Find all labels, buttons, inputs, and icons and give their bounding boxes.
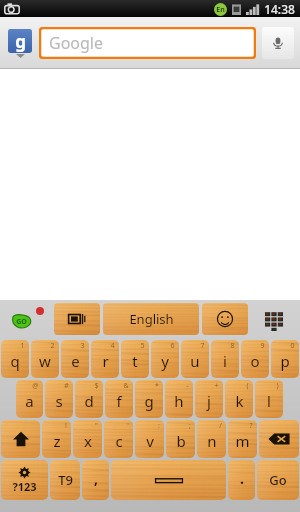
staticText: f xyxy=(116,391,122,411)
button[interactable]: T9 xyxy=(50,460,80,500)
button[interactable]: ; xyxy=(166,420,195,458)
button[interactable]: 0 xyxy=(271,340,299,378)
button[interactable]: 7 xyxy=(181,340,209,378)
staticText: g xyxy=(144,391,154,411)
staticText: T9 xyxy=(58,471,73,489)
staticText: e xyxy=(71,351,80,371)
button[interactable]: Google xyxy=(39,27,256,59)
button[interactable]: 6 xyxy=(151,340,179,378)
staticText: o xyxy=(250,351,260,371)
button[interactable]: 9 xyxy=(241,340,269,378)
staticText: b xyxy=(176,431,186,451)
staticText: v xyxy=(146,431,154,451)
staticText: h xyxy=(174,391,184,411)
button[interactable]: Space xyxy=(111,460,226,500)
staticText: l xyxy=(267,391,271,411)
staticText: ' xyxy=(127,421,129,431)
button[interactable]: & xyxy=(105,380,133,418)
button[interactable]: g xyxy=(6,28,34,58)
button[interactable]: Layout xyxy=(54,303,100,335)
button[interactable]: Shift xyxy=(1,420,40,458)
staticText: c xyxy=(115,431,123,451)
staticText: i xyxy=(223,351,227,371)
staticText: d xyxy=(84,391,94,411)
staticText: * xyxy=(155,381,159,391)
staticText: Google xyxy=(49,32,104,54)
staticText: / xyxy=(219,421,222,431)
button[interactable]: + xyxy=(195,380,223,418)
staticText: ( xyxy=(246,381,249,391)
button[interactable]: 3 xyxy=(61,340,89,378)
staticText: . xyxy=(240,469,244,488)
button[interactable]: * xyxy=(135,380,163,418)
staticText: En xyxy=(216,5,225,15)
button[interactable]: English xyxy=(103,303,199,335)
button[interactable]: ! xyxy=(42,420,71,458)
button[interactable]: Go xyxy=(257,460,299,500)
staticText: x xyxy=(84,431,92,451)
staticText: 4 xyxy=(110,341,115,351)
button[interactable]: - xyxy=(165,380,193,418)
button[interactable]: " xyxy=(73,420,102,458)
staticText: English xyxy=(129,310,174,328)
staticText: n xyxy=(207,431,217,451)
staticText: 0 xyxy=(290,341,295,351)
button[interactable]: 4 xyxy=(91,340,119,378)
staticText: 3 xyxy=(80,341,85,351)
staticText: # xyxy=(64,381,69,391)
button[interactable]: 8 xyxy=(211,340,239,378)
button[interactable]: ' xyxy=(104,420,133,458)
staticText: m xyxy=(235,431,250,451)
button[interactable]: 1 xyxy=(1,340,29,378)
staticText: & xyxy=(123,381,129,391)
button[interactable]: , xyxy=(82,460,109,500)
button[interactable]: / xyxy=(197,420,226,458)
staticText: 2 xyxy=(50,341,55,351)
button[interactable]: @ xyxy=(16,380,43,418)
button[interactable]: 2 xyxy=(31,340,59,378)
button[interactable]: Backspace xyxy=(259,420,299,458)
staticText: j xyxy=(207,391,211,411)
staticText: GO xyxy=(16,317,27,327)
staticText: " xyxy=(95,421,98,431)
staticText: ? xyxy=(249,421,253,431)
button[interactable]: Emoji xyxy=(202,303,248,335)
button[interactable]: 5 xyxy=(121,340,149,378)
staticText: 5 xyxy=(140,341,145,351)
staticText: ) xyxy=(276,381,279,391)
staticText: k xyxy=(235,391,244,411)
staticText: r xyxy=(102,351,109,371)
button[interactable]: # xyxy=(45,380,73,418)
button[interactable]: ) xyxy=(255,380,283,418)
button[interactable]: ( xyxy=(225,380,253,418)
button[interactable]: GO Keyboard xyxy=(3,303,51,335)
staticText: @ xyxy=(32,381,39,391)
button[interactable]: : xyxy=(135,420,164,458)
staticText: p xyxy=(280,351,290,371)
staticText: Go xyxy=(269,471,287,489)
staticText: 8 xyxy=(230,341,235,351)
staticText: , xyxy=(94,469,98,488)
staticText: w xyxy=(39,351,51,371)
button[interactable]: Voice search xyxy=(262,27,294,59)
staticText: 14:38 xyxy=(264,1,295,17)
staticText: $ xyxy=(94,381,99,391)
button[interactable]: . xyxy=(228,460,255,500)
staticText: 1 xyxy=(20,341,25,351)
staticText: y xyxy=(161,351,169,371)
staticText: 7 xyxy=(200,341,205,351)
staticText: ! xyxy=(65,421,67,431)
button[interactable]: Numeric keypad xyxy=(251,303,297,335)
staticText: 6 xyxy=(170,341,175,351)
button[interactable]: ? xyxy=(228,420,257,458)
staticText: 9 xyxy=(260,341,265,351)
button[interactable]: ?123 xyxy=(1,460,48,500)
staticText: : xyxy=(158,421,160,431)
staticText: a xyxy=(25,391,34,411)
staticText: q xyxy=(10,351,20,371)
staticText: z xyxy=(53,431,61,451)
staticText: ?123 xyxy=(12,479,37,494)
button[interactable]: $ xyxy=(75,380,103,418)
staticText: ; xyxy=(189,421,191,431)
staticText: + xyxy=(214,381,219,391)
